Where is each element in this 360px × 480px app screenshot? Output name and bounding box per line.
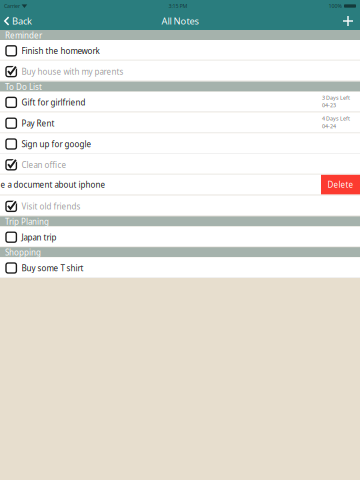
- button[interactable]: Add note: [335, 12, 360, 30]
- staticText: 04-24: [322, 122, 336, 130]
- staticText: 3 Days Left: [322, 94, 350, 101]
- staticText: Buy some T shirt: [21, 263, 83, 273]
- staticText: Visit old friends: [21, 201, 80, 212]
- staticText: 3:15 PM: [168, 2, 187, 10]
- button[interactable]: e a document about iphone: [0, 175, 360, 196]
- staticText: Clean office: [21, 160, 66, 170]
- staticText: Carrier: [4, 2, 20, 10]
- button[interactable]: Clean office: [0, 154, 360, 175]
- staticText: Delete: [327, 179, 353, 190]
- staticText: Finish the homework: [21, 46, 99, 56]
- button[interactable]: Japan trip: [0, 226, 360, 247]
- staticText: Gift for girlfriend: [21, 97, 85, 108]
- button[interactable]: Buy some T shirt: [0, 257, 360, 278]
- button[interactable]: Sign up for google: [0, 133, 360, 154]
- staticText: Trip Planing: [5, 216, 49, 227]
- button[interactable]: Gift for girlfriend: [0, 92, 360, 112]
- staticText: Japan trip: [21, 232, 56, 243]
- staticText: All Notes: [161, 15, 198, 27]
- staticText: Reminder: [5, 30, 42, 41]
- staticText: Buy house with my parents: [21, 66, 123, 77]
- button[interactable]: Visit old friends: [0, 196, 360, 216]
- button[interactable]: Back: [0, 12, 38, 30]
- staticText: e a document about iphone: [0, 179, 105, 190]
- staticText: Pay Rent: [21, 118, 54, 129]
- staticText: 100%: [329, 2, 342, 10]
- button[interactable]: Pay Rent: [0, 112, 360, 133]
- staticText: To Do List: [5, 82, 42, 92]
- staticText: Sign up for google: [21, 139, 91, 149]
- staticText: 4 Days Left: [322, 115, 350, 122]
- staticText: Shopping: [5, 247, 41, 258]
- staticText: Back: [12, 15, 32, 27]
- button[interactable]: Buy house with my parents: [0, 61, 360, 82]
- staticText: 04-23: [322, 102, 336, 109]
- button[interactable]: Finish the homework: [0, 40, 360, 61]
